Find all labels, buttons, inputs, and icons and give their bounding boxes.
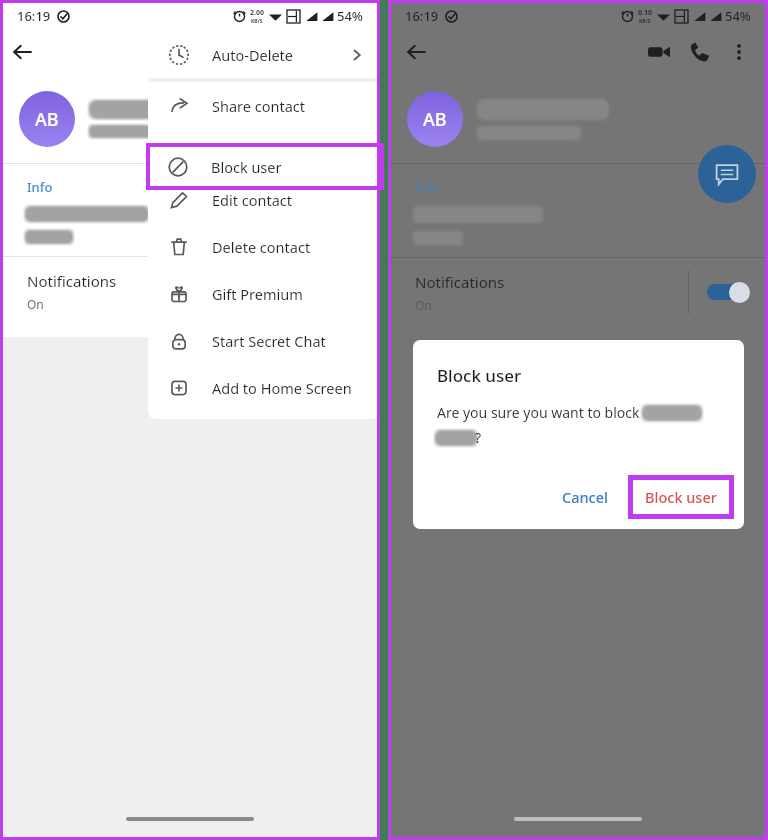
staticText: KB/S	[251, 18, 263, 25]
staticText: Info	[27, 178, 53, 196]
staticText: Cancel	[562, 487, 608, 507]
staticText: Start Secret Chat	[212, 331, 326, 351]
staticText: Are you sure you want to block	[437, 403, 644, 422]
staticText: AB	[423, 107, 447, 132]
button[interactable]: Notifications toggle	[689, 270, 765, 314]
button[interactable]: Share contact	[148, 82, 380, 129]
button[interactable]: Video call	[639, 32, 679, 72]
button[interactable]: Back	[397, 32, 437, 72]
button[interactable]: Edit contact	[148, 176, 380, 223]
staticText: KB/S	[639, 18, 651, 25]
button[interactable]: Add to Home Screen	[148, 364, 380, 411]
button[interactable]: Auto-Delete	[148, 31, 380, 78]
button[interactable]: Call	[679, 32, 719, 72]
staticText: 54%	[725, 7, 751, 25]
staticText: On	[27, 296, 44, 312]
staticText: Block user	[645, 487, 717, 507]
staticText: On	[415, 297, 432, 313]
staticText: Gift Premium	[212, 284, 303, 304]
button[interactable]: Block user	[633, 480, 729, 514]
button[interactable]: Back	[3, 32, 43, 72]
staticText: Block user	[437, 364, 522, 387]
button[interactable]: Send message	[698, 145, 756, 203]
button[interactable]: Start Secret Chat	[148, 317, 380, 364]
staticText: Info	[415, 178, 441, 196]
button[interactable]: More options	[719, 32, 759, 72]
button[interactable]: Block user	[150, 147, 380, 186]
button[interactable]: Delete contact	[148, 223, 380, 270]
button[interactable]: Gift Premium	[148, 270, 380, 317]
staticText: Edit contact	[212, 190, 292, 210]
staticText: Share contact	[212, 96, 305, 116]
staticText: 16:19	[17, 7, 51, 25]
staticText: Notifications	[27, 271, 117, 291]
staticText: 16:19	[405, 7, 439, 25]
staticText: Auto-Delete	[212, 45, 293, 65]
staticText: 54%	[337, 7, 363, 25]
staticText: Notifications	[415, 272, 505, 292]
staticText: AB	[35, 107, 59, 132]
staticText: 2.00	[250, 8, 264, 18]
staticText: Block user	[211, 157, 282, 177]
staticText: 0.10	[638, 8, 652, 18]
staticText: Delete contact	[212, 237, 311, 257]
button[interactable]: Cancel	[548, 479, 622, 515]
staticText: Add to Home Screen	[212, 378, 352, 398]
staticText: ?	[475, 428, 482, 447]
